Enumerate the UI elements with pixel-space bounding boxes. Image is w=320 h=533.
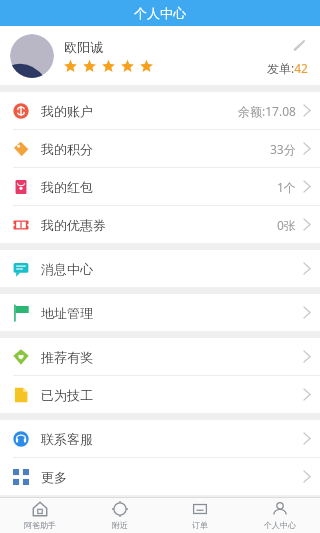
button[interactable]: 消息中心 <box>0 250 320 287</box>
staticText: 我的红包 <box>41 179 277 195</box>
staticText: 订单 <box>192 520 208 530</box>
button[interactable]: 更多 <box>0 458 320 495</box>
staticText: 地址管理 <box>41 305 304 321</box>
button[interactable]: 订单 <box>160 498 240 533</box>
button[interactable]: 我的优惠券 <box>0 206 320 243</box>
button[interactable]: 已为技工 <box>0 376 320 413</box>
staticText: 发单:42 <box>267 60 308 76</box>
staticText: 余额:17.08 <box>238 103 296 119</box>
button[interactable]: 阿爸助手 <box>0 498 80 533</box>
button[interactable]: 我的红包 <box>0 168 320 205</box>
staticText: 阿爸助手 <box>24 520 56 530</box>
staticText: 个人中心 <box>264 520 296 530</box>
button[interactable]: 附近 <box>80 498 160 533</box>
button[interactable]: 联系客服 <box>0 420 320 457</box>
button[interactable]: Edit profile <box>290 36 308 54</box>
staticText: 消息中心 <box>41 261 304 277</box>
staticText: 0张 <box>277 217 296 233</box>
button[interactable]: 我的账户 <box>0 92 320 129</box>
staticText: 1个 <box>277 179 296 195</box>
staticText: 我的优惠券 <box>41 217 277 233</box>
staticText: 推荐有奖 <box>41 349 304 365</box>
button[interactable]: 我的积分 <box>0 130 320 167</box>
button[interactable]: 个人中心 <box>240 498 320 533</box>
staticText: 我的账户 <box>41 103 238 119</box>
button[interactable]: 地址管理 <box>0 294 320 331</box>
staticText: 联系客服 <box>41 431 304 447</box>
button[interactable]: 推荐有奖 <box>0 338 320 375</box>
staticText: 附近 <box>112 520 128 530</box>
staticText: 更多 <box>41 469 304 485</box>
button[interactable]: 欧阳诚 <box>0 26 320 85</box>
staticText: 33分 <box>270 141 296 157</box>
staticText: 个人中心 <box>134 5 186 21</box>
staticText: 已为技工 <box>41 387 304 403</box>
staticText: 我的积分 <box>41 141 270 157</box>
staticText: 欧阳诚 <box>64 39 103 55</box>
